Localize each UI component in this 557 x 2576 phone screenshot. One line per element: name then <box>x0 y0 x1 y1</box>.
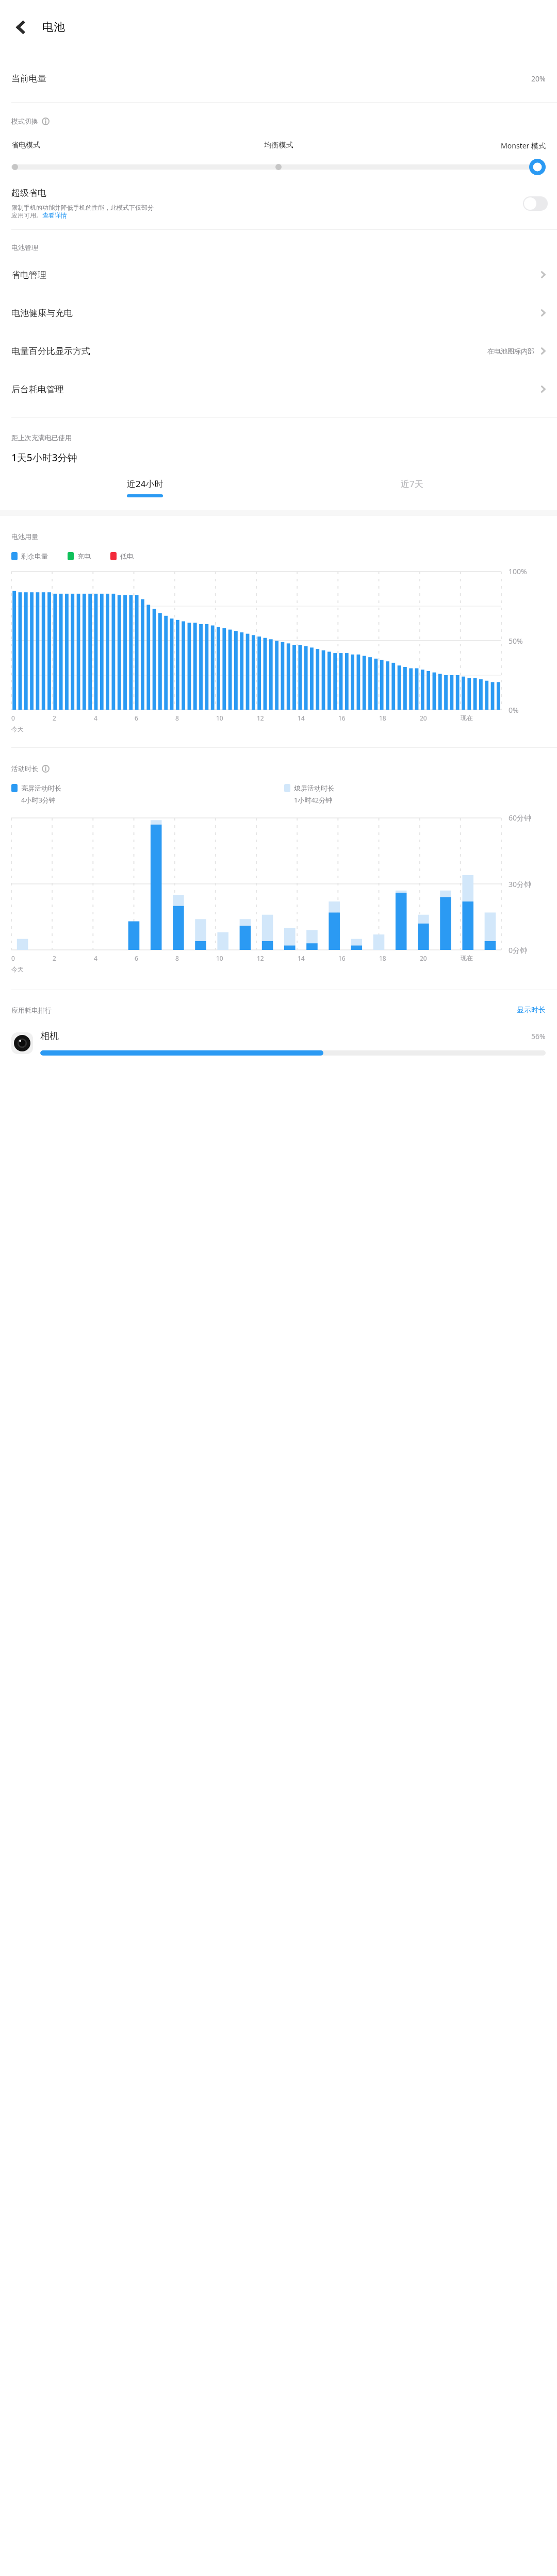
staticText: 12 <box>257 714 264 722</box>
button[interactable]: 显示时长 <box>517 1006 546 1015</box>
staticText: 限制手机的功能并降低手机的性能，此模式下仅部分 <box>11 204 154 211</box>
staticText: 4 <box>94 954 97 962</box>
staticText: 2 <box>53 714 56 722</box>
button[interactable]: 近24小时 <box>11 478 278 497</box>
staticText: 充电 <box>77 552 91 560</box>
staticText: 省电管理 <box>11 270 46 280</box>
button[interactable]: 超级省电 <box>0 188 557 229</box>
staticText: 模式切换 <box>11 117 38 125</box>
button[interactable]: 模式切换 <box>11 117 50 125</box>
button[interactable]: 后台耗电管理 <box>0 370 557 408</box>
staticText: 0 <box>11 954 15 962</box>
staticText: 今天 <box>11 965 24 973</box>
staticText: 熄屏活动时长 <box>294 784 334 792</box>
staticText: 10 <box>216 954 223 962</box>
button[interactable]: Back <box>6 13 35 42</box>
button[interactable]: 当前电量 <box>0 55 557 102</box>
staticText: 4 <box>94 714 97 722</box>
staticText: 10 <box>216 714 223 722</box>
staticText: 18 <box>379 954 386 962</box>
staticText: 今天 <box>11 725 24 733</box>
button[interactable]: 查看详情 <box>42 211 67 219</box>
staticText: 18 <box>379 714 386 722</box>
button[interactable]: 省电管理 <box>0 256 557 294</box>
staticText: 电池 <box>42 20 65 35</box>
staticText: 近7天 <box>401 478 423 490</box>
staticText: 现在 <box>461 954 473 962</box>
button[interactable]: Monster 模式 <box>368 141 546 150</box>
staticText: 20 <box>420 954 427 962</box>
staticText: 8 <box>175 954 179 962</box>
button[interactable]: 电池健康与充电 <box>0 294 557 332</box>
staticText: 电池健康与充电 <box>11 308 73 319</box>
staticText: 16 <box>338 954 346 962</box>
staticText: 应用耗电排行 <box>11 1006 52 1014</box>
staticText: 16 <box>338 714 346 722</box>
staticText: 1小时42分钟 <box>294 795 333 805</box>
staticText: 6 <box>135 714 138 722</box>
staticText: 电池用量 <box>11 532 38 541</box>
staticText: 0% <box>509 705 519 715</box>
staticText: 14 <box>298 714 305 722</box>
button[interactable]: 超级省电 toggle <box>523 196 548 211</box>
staticText: 6 <box>135 954 138 962</box>
staticText: 60分钟 <box>509 813 532 823</box>
staticText: 电量百分比显示方式 <box>11 346 90 357</box>
staticText: 0 <box>11 714 15 722</box>
staticText: 近24小时 <box>127 478 163 490</box>
staticText: 低电 <box>120 552 134 560</box>
button[interactable]: 近7天 <box>278 478 546 497</box>
staticText: 剩余电量 <box>21 552 48 560</box>
staticText: 电池管理 <box>11 243 38 252</box>
staticText: 20% <box>531 74 546 83</box>
staticText: 8 <box>175 714 179 722</box>
button[interactable]: 相机 <box>0 1030 557 1056</box>
staticText: 50% <box>509 636 523 646</box>
staticText: 距上次充满电已使用 <box>11 433 72 442</box>
staticText: 30分钟 <box>509 879 532 889</box>
staticText: 1天5小时3分钟 <box>11 451 77 464</box>
staticText: 0分钟 <box>509 945 528 955</box>
staticText: 在电池图标内部 <box>487 347 534 355</box>
staticText: 超级省电 <box>11 188 46 198</box>
staticText: 活动时长 <box>11 764 38 773</box>
button[interactable]: 电量百分比显示方式 <box>0 332 557 370</box>
button[interactable] <box>11 159 546 175</box>
staticText: 12 <box>257 954 264 962</box>
staticText: 14 <box>298 954 305 962</box>
staticText: 相机 <box>40 1030 59 1042</box>
staticText: 100% <box>509 566 527 576</box>
staticText: 应用可用。 <box>11 211 42 219</box>
staticText: 56% <box>531 1031 546 1041</box>
staticText: 亮屏活动时长 <box>21 784 61 792</box>
button[interactable]: 均衡模式 <box>190 141 368 150</box>
staticText: 2 <box>53 954 56 962</box>
staticText: 后台耗电管理 <box>11 384 64 395</box>
button[interactable]: 省电模式 <box>11 141 190 150</box>
staticText: 4小时3分钟 <box>21 795 56 805</box>
staticText: 现在 <box>461 714 473 722</box>
staticText: 20 <box>420 714 427 722</box>
staticText: 当前电量 <box>11 73 46 84</box>
button[interactable]: 活动时长 <box>11 764 50 773</box>
